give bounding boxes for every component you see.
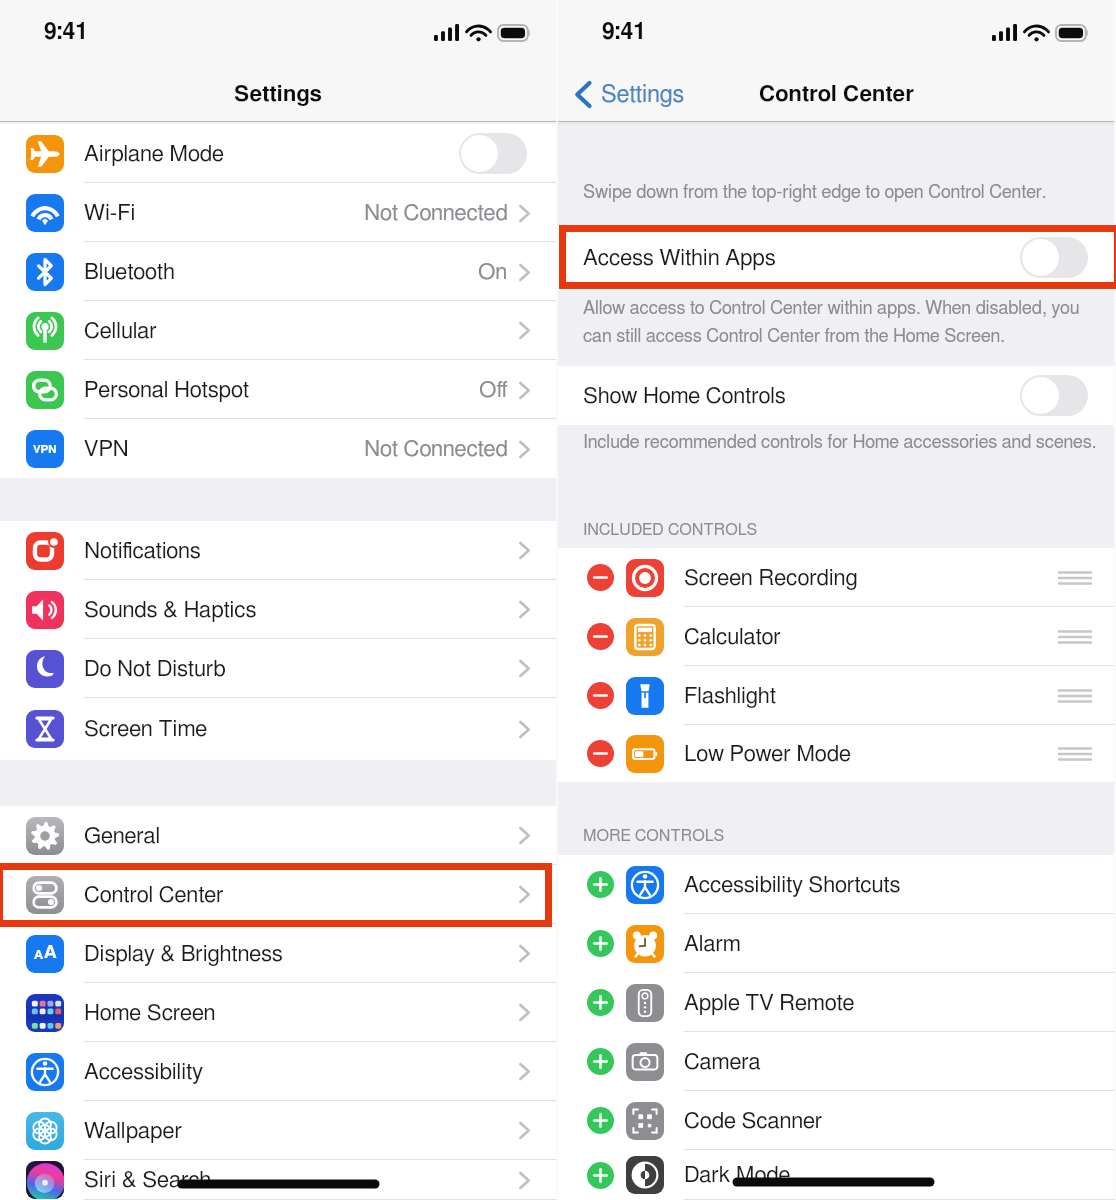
button[interactable]: Sounds & Haptics [0,580,556,639]
staticText: A [44,944,57,962]
button[interactable]: Home Screen [0,983,556,1042]
staticText: Screen Recording [684,567,858,589]
staticText: Control Center [759,83,914,105]
staticText: Wallpaper [84,1120,182,1142]
button[interactable]: Toggle [1020,237,1088,278]
button[interactable]: Do Not Disturb [0,639,556,698]
button[interactable]: Remove control [587,740,614,767]
button[interactable]: Airplane Mode [0,124,556,183]
button[interactable]: Notifications [0,521,556,580]
button[interactable]: Add control [587,1107,614,1134]
button[interactable]: Add control [587,1048,614,1075]
staticText: Camera [684,1051,761,1073]
staticText: Access Within Apps [583,247,776,269]
button[interactable]: Remove control [558,607,1114,666]
staticText: Settings [601,83,685,107]
staticText: Accessibility Shortcuts [684,874,901,896]
staticText: VPN [33,444,57,455]
button[interactable]: Bluetooth [0,242,556,301]
staticText: Alarm [684,933,741,955]
staticText: Notifications [84,540,201,562]
button[interactable]: Settings [574,80,685,109]
staticText: Airplane Mode [84,143,224,165]
button[interactable]: Toggle [459,133,527,174]
button[interactable]: Add control [587,1162,614,1189]
staticText: Show Home Controls [583,385,786,407]
staticText: MORE CONTROLS [583,828,725,844]
staticText: Personal Hotspot [84,379,250,401]
button[interactable]: Add control [558,1032,1114,1091]
button[interactable]: Add control [558,973,1114,1032]
button[interactable]: Reorder [1058,743,1092,765]
button[interactable]: Add control [587,989,614,1016]
button[interactable]: Wallpaper [0,1101,556,1160]
button[interactable]: Personal Hotspot [0,360,556,419]
button[interactable]: Add control [558,1091,1114,1150]
button[interactable]: Screen Time [0,698,556,760]
staticText: On [478,261,508,283]
staticText: Sounds & Haptics [84,599,257,621]
button[interactable]: VPN [0,419,556,478]
button[interactable]: Remove control [558,666,1114,725]
button[interactable]: Remove control [587,564,614,591]
staticText: Code Scanner [684,1110,823,1132]
staticText: Flashlight [684,685,776,707]
staticText: Not Connected [364,202,508,224]
staticText: Do Not Disturb [84,658,226,680]
staticText: Cellular [84,320,157,342]
staticText: General [84,825,161,847]
button[interactable]: Remove control [558,725,1114,782]
staticText: Low Power Mode [684,743,851,765]
staticText: Swipe down from the top-right edge to op… [583,183,1047,201]
staticText: Home Screen [84,1002,216,1024]
button[interactable]: Reorder [1058,567,1092,589]
button[interactable]: Add control [587,930,614,957]
button[interactable]: Reorder [1058,685,1092,707]
button[interactable]: General [0,806,556,865]
button[interactable]: Cellular [0,301,556,360]
button[interactable]: Show Home Controls [558,366,1114,425]
button[interactable]: Add control [558,855,1114,914]
staticText: Display & Brightness [84,943,283,965]
button[interactable]: Remove control [587,682,614,709]
staticText: Bluetooth [84,261,175,283]
staticText: Control Center [84,884,224,906]
button[interactable]: Reorder [1058,626,1092,648]
staticText: INCLUDED CONTROLS [583,522,758,538]
button[interactable]: Add control [587,871,614,898]
button[interactable]: Remove control [558,548,1114,607]
button[interactable]: Add control [558,1150,1114,1200]
staticText: Calculator [684,626,781,648]
staticText: VPN [84,438,129,460]
staticText: Siri & Search [84,1169,212,1191]
staticText: Not Connected [364,438,508,460]
button[interactable]: Wi-Fi [0,183,556,242]
staticText: Wi-Fi [84,202,136,224]
button[interactable]: Accessibility [0,1042,556,1101]
button[interactable]: Remove control [587,623,614,650]
button[interactable]: Siri & Search [0,1160,556,1200]
button[interactable]: A [0,924,556,983]
staticText: A [34,949,44,962]
button[interactable]: Toggle [1020,375,1088,416]
staticText: Screen Time [84,718,208,740]
staticText: 9:41 [602,21,647,44]
staticText: Apple TV Remote [684,992,855,1014]
button[interactable]: Add control [558,914,1114,973]
staticText: Accessibility [84,1061,203,1083]
staticText: Off [479,379,508,401]
staticText: Include recommended controls for Home ac… [583,433,1097,451]
staticText: 9:41 [44,21,89,44]
staticText: Settings [234,83,322,105]
button[interactable]: Access Within Apps [558,225,1114,290]
staticText: Dark Mode [684,1164,791,1186]
button[interactable]: Control Center [0,865,556,924]
staticText: Allow access to Control Center within ap… [583,299,1080,345]
